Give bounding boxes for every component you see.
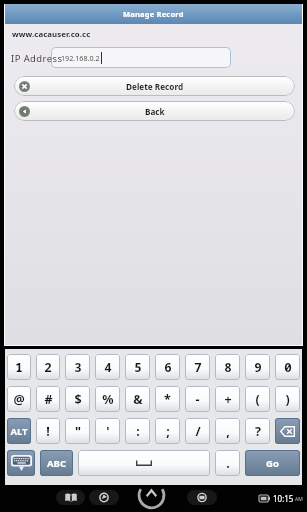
staticText: Go	[266, 457, 279, 470]
button[interactable]: 2	[36, 354, 60, 380]
button[interactable]: 6	[155, 354, 180, 380]
staticText: :	[136, 423, 140, 440]
staticText: .	[226, 455, 230, 472]
other: Battery	[259, 495, 270, 502]
button[interactable]: 8	[215, 354, 240, 380]
button[interactable]: .	[215, 450, 240, 476]
button[interactable]: *	[155, 386, 180, 412]
button[interactable]: %	[95, 386, 120, 412]
button[interactable]: 7	[185, 354, 210, 380]
staticText: -	[195, 391, 200, 408]
staticText: 6	[164, 359, 172, 376]
button[interactable]: +	[215, 386, 240, 412]
staticText: Delete Record	[126, 81, 184, 92]
staticText: @	[13, 391, 25, 408]
staticText: "	[75, 423, 81, 440]
button[interactable]: (	[245, 386, 270, 412]
button[interactable]: #	[36, 386, 60, 412]
staticText: 3	[74, 359, 82, 376]
button[interactable]: ;	[155, 418, 180, 444]
staticText: /	[195, 423, 201, 440]
staticText: )	[285, 391, 290, 408]
button[interactable]: Space	[78, 450, 210, 476]
button[interactable]: Backspace	[275, 418, 300, 444]
staticText: 9	[254, 359, 262, 376]
staticText: Back	[145, 106, 165, 117]
button[interactable]: ,	[215, 418, 240, 444]
staticText: 1	[15, 359, 23, 376]
button[interactable]: &	[125, 386, 150, 412]
staticText: 7	[194, 359, 202, 376]
button[interactable]: 4	[95, 354, 120, 380]
staticText: !	[46, 423, 50, 440]
staticText: 2	[44, 359, 52, 376]
button[interactable]: ?	[245, 418, 270, 444]
staticText: '	[106, 423, 110, 440]
button[interactable]: @	[7, 386, 31, 412]
other: Hide keyboard	[11, 455, 32, 471]
button[interactable]: ABC	[40, 450, 73, 476]
staticText: 5	[134, 359, 142, 376]
other: Backspace	[280, 426, 295, 437]
other: Space	[136, 460, 152, 466]
staticText: %	[102, 391, 114, 408]
staticText: ?	[255, 423, 261, 440]
staticText: ;	[166, 423, 170, 440]
staticText: ALT	[10, 425, 28, 438]
staticText: &	[133, 391, 143, 408]
button[interactable]: ALT	[7, 418, 31, 444]
other: Back	[19, 106, 30, 117]
button[interactable]: Go	[245, 450, 300, 476]
button[interactable]: Home	[136, 487, 167, 506]
staticText: *	[164, 391, 171, 408]
staticText: +	[224, 391, 232, 408]
staticText: #	[44, 391, 53, 408]
staticText: Manage Record	[123, 9, 184, 19]
button[interactable]: 5	[125, 354, 150, 380]
button[interactable]: Hide keyboard	[7, 450, 35, 476]
button[interactable]: "	[65, 418, 90, 444]
staticText: 4	[104, 359, 112, 376]
staticText: 8	[224, 359, 232, 376]
staticText: ABC	[47, 457, 66, 470]
button[interactable]: 3	[65, 354, 90, 380]
button[interactable]: :	[125, 418, 150, 444]
button[interactable]: Back	[89, 490, 119, 505]
staticText: (	[255, 391, 260, 408]
button[interactable]: 192.168.0.2	[52, 48, 230, 67]
button[interactable]: Back	[14, 101, 295, 121]
button[interactable]: 1	[7, 354, 31, 380]
staticText: AM	[295, 496, 303, 503]
staticText: 192.168.0.2	[61, 53, 100, 63]
button[interactable]: /	[185, 418, 210, 444]
staticText: IP Address	[11, 52, 63, 65]
other: Delete record	[19, 81, 30, 92]
button[interactable]: !	[36, 418, 60, 444]
staticText: 10:15	[273, 493, 294, 504]
staticText: ,	[226, 423, 230, 440]
button[interactable]: 0	[275, 354, 300, 380]
button[interactable]: '	[95, 418, 120, 444]
button[interactable]: -	[185, 386, 210, 412]
staticText: $	[74, 391, 82, 408]
button[interactable]: )	[275, 386, 300, 412]
button[interactable]: 9	[245, 354, 270, 380]
button[interactable]: Recent apps	[187, 490, 217, 505]
button[interactable]: $	[65, 386, 90, 412]
staticText: 0	[284, 359, 292, 376]
staticText: www.cacauser.co.cc	[12, 29, 91, 40]
button[interactable]: Delete Record	[14, 76, 295, 96]
button[interactable]: Bookmarks	[56, 490, 85, 505]
